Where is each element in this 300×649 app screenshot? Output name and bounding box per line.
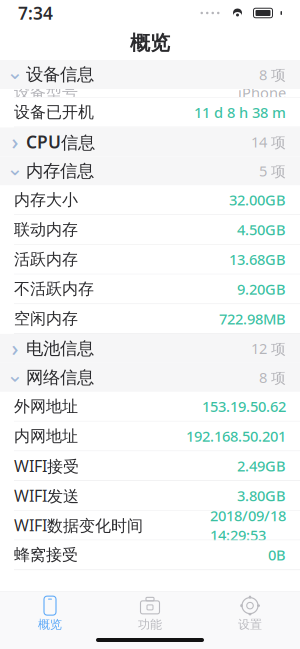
button[interactable]: 概览	[0, 591, 100, 636]
staticText: 722.98MB	[219, 309, 286, 328]
button[interactable]: ⌄	[0, 156, 300, 185]
staticText: ⌄	[6, 157, 23, 180]
staticText: 13.68GB	[229, 250, 286, 269]
staticText: 153.19.50.62	[202, 397, 286, 416]
staticText: ⌄	[6, 61, 23, 83]
staticText: 蜂窝接受	[14, 545, 78, 565]
button[interactable]: ›	[0, 334, 300, 363]
button[interactable]: ⌄	[0, 60, 300, 89]
staticText: 0B	[268, 545, 286, 565]
staticText: 2018/09/18 14:29:53	[210, 506, 286, 545]
staticText: 11 d 8 h 38 m	[194, 102, 286, 122]
staticText: 不活跃内存	[14, 279, 94, 299]
staticText: 7:34	[18, 1, 53, 24]
staticText: 功能	[138, 617, 162, 632]
staticText: 4.50GB	[237, 220, 286, 239]
staticText: 设备已开机	[14, 102, 94, 122]
staticText: 网络信息	[26, 367, 94, 388]
staticText: 设备信息	[26, 64, 94, 85]
staticText: ›	[11, 127, 18, 155]
staticText: 内网地址	[14, 426, 78, 446]
button[interactable]: ›	[0, 127, 300, 156]
staticText: 联动内存	[14, 220, 78, 239]
staticText: ⌄	[6, 364, 23, 386]
staticText: 14 项	[251, 132, 286, 152]
staticText: 3.80GB	[237, 486, 286, 505]
button[interactable]: ⌄	[0, 363, 300, 392]
staticText: 概览	[38, 617, 62, 632]
staticText: 192.168.50.201	[186, 426, 286, 446]
staticText: CPU信息	[26, 130, 95, 153]
staticText: 外网地址	[14, 397, 78, 416]
staticText: 8 项	[259, 368, 286, 387]
staticText: 9.20GB	[237, 279, 286, 299]
staticText: WIFI接受	[14, 455, 79, 476]
staticText: iPhone	[238, 83, 286, 102]
staticText: 内存信息	[26, 160, 94, 182]
button[interactable]: 设置	[200, 591, 300, 636]
staticText: 2.49GB	[237, 456, 286, 476]
staticText: 概览	[130, 31, 170, 55]
staticText: 设置	[238, 617, 262, 632]
staticText: 空闲内存	[14, 309, 78, 329]
staticText: 5 项	[259, 161, 286, 181]
button[interactable]: 功能	[100, 591, 200, 636]
staticText: 内存大小	[14, 190, 78, 210]
staticText: 32.00GB	[229, 190, 286, 210]
staticText: WIFI数据变化时间	[14, 514, 143, 536]
staticText: 电池信息	[26, 338, 94, 359]
staticText: 设备型号	[14, 83, 78, 102]
staticText: 活跃内存	[14, 249, 78, 269]
staticText: ›	[11, 334, 18, 362]
staticText: 12 项	[251, 339, 286, 358]
staticText: 8 项	[259, 65, 286, 84]
staticText: WIFI发送	[14, 485, 79, 506]
